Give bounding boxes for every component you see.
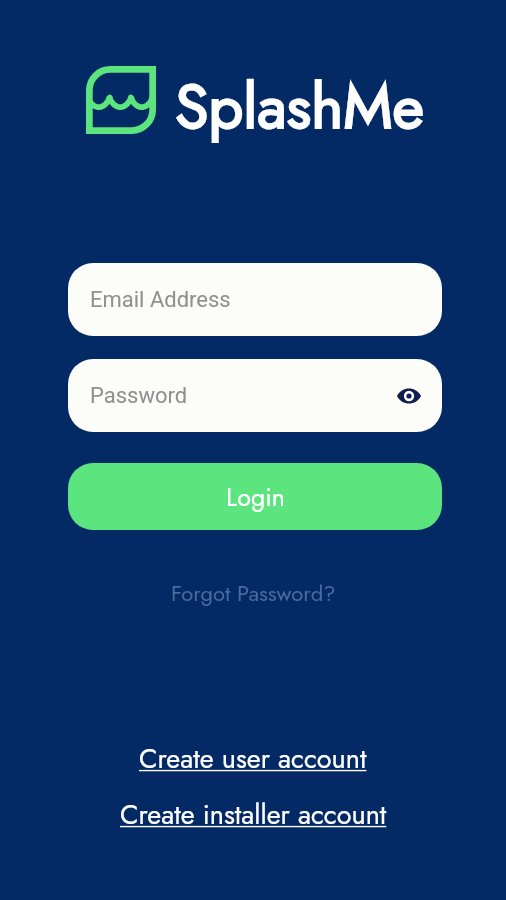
staticText: Login <box>226 479 285 515</box>
staticText: Email Address <box>90 287 231 313</box>
button[interactable]: Show password <box>388 374 430 418</box>
button[interactable]: Email Address <box>68 263 442 336</box>
button[interactable]: Create installer account <box>110 789 397 840</box>
staticText: SplashMe <box>175 63 425 151</box>
staticText: Create user account <box>139 739 367 778</box>
button[interactable]: Password <box>68 359 442 432</box>
button[interactable]: Login <box>68 463 442 530</box>
button[interactable]: Create user account <box>129 733 377 784</box>
button[interactable]: Forgot Password? <box>159 571 348 615</box>
staticText: Create installer account <box>120 795 387 834</box>
staticText: Password <box>90 383 188 409</box>
staticText: Forgot Password? <box>171 577 336 609</box>
